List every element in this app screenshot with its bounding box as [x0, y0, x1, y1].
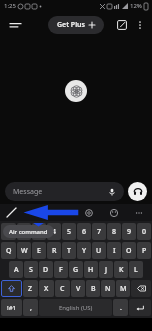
staticText: ,	[30, 303, 32, 313]
staticText: C	[60, 284, 65, 294]
staticText: Y	[82, 246, 87, 256]
button[interactable]: P	[137, 242, 151, 259]
button[interactable]: ,	[23, 299, 38, 316]
staticText: 7	[97, 227, 102, 237]
button[interactable]: L	[129, 261, 143, 278]
staticText: R	[52, 246, 57, 256]
button[interactable]: Get Plus	[48, 16, 104, 34]
staticText: I	[113, 246, 116, 256]
staticText: D	[43, 265, 49, 275]
staticText: S	[29, 265, 33, 275]
button[interactable]: K	[114, 261, 128, 278]
staticText: N	[105, 284, 111, 294]
button[interactable]: S	[24, 261, 38, 278]
button[interactable]: M	[116, 280, 130, 297]
staticText: 1	[6, 227, 11, 237]
button[interactable]: !#1	[1, 299, 22, 316]
staticText: U	[96, 246, 102, 256]
button[interactable]: 4	[47, 223, 61, 240]
button[interactable]: T	[62, 242, 76, 259]
staticText: 4	[52, 227, 57, 237]
button[interactable]: V	[71, 280, 85, 297]
staticText: 8	[112, 227, 117, 237]
staticText: 1:25	[4, 2, 16, 10]
button[interactable]: Message	[5, 182, 124, 201]
button[interactable]: Enter	[129, 299, 151, 316]
button[interactable]: H	[84, 261, 98, 278]
button[interactable]: F	[54, 261, 68, 278]
button[interactable]: Q	[1, 242, 16, 259]
button[interactable]: Shift	[1, 280, 22, 297]
button[interactable]: 9	[122, 223, 136, 240]
staticText: 9	[127, 227, 132, 237]
staticText: Z	[28, 284, 33, 294]
staticText: B	[91, 284, 96, 294]
staticText: A	[14, 265, 19, 275]
staticText: J	[105, 265, 108, 275]
button[interactable]: New chat	[113, 16, 131, 34]
staticText: L	[134, 265, 138, 275]
button[interactable]: Y	[77, 242, 91, 259]
staticText: G	[73, 265, 79, 275]
button[interactable]: E	[32, 242, 46, 259]
button[interactable]: 8	[107, 223, 121, 240]
button[interactable]: I	[107, 242, 121, 259]
staticText: X	[44, 284, 49, 294]
staticText: 3	[37, 227, 42, 237]
button[interactable]: D	[39, 261, 53, 278]
button[interactable]: R	[47, 242, 61, 259]
staticText: Q	[6, 246, 12, 256]
button[interactable]: C	[55, 280, 70, 297]
button[interactable]: More options	[131, 16, 149, 34]
button[interactable]: J	[99, 261, 113, 278]
staticText: 6	[82, 227, 87, 237]
button[interactable]: O	[122, 242, 136, 259]
staticText: F	[59, 265, 63, 275]
staticText: English (US)	[59, 304, 93, 312]
button[interactable]: 1	[1, 223, 16, 240]
button[interactable]: More	[132, 206, 145, 219]
staticText: 5	[67, 227, 72, 237]
button[interactable]: B	[86, 280, 100, 297]
button[interactable]: W	[17, 242, 31, 259]
staticText: 2	[22, 227, 27, 237]
staticText: !#1	[7, 304, 16, 312]
button[interactable]: 6	[77, 223, 91, 240]
staticText: Get Plus	[57, 20, 86, 30]
staticText: .	[120, 303, 122, 313]
button[interactable]: 5	[62, 223, 76, 240]
button[interactable]: Z	[23, 280, 38, 297]
button[interactable]: Voice mode	[128, 182, 147, 201]
other: Voice input	[108, 188, 116, 196]
button[interactable]: A	[9, 261, 23, 278]
button[interactable]: Menu	[6, 16, 24, 34]
button[interactable]: X	[39, 280, 54, 297]
staticText: 12%	[130, 2, 142, 10]
staticText: O	[126, 246, 132, 256]
staticText: 0	[142, 227, 147, 237]
button[interactable]: 7	[92, 223, 106, 240]
button[interactable]: Handwriting	[5, 206, 18, 219]
button[interactable]: 0	[137, 223, 151, 240]
staticText: V	[76, 284, 81, 294]
button[interactable]: G	[69, 261, 83, 278]
button[interactable]: .	[113, 299, 128, 316]
button[interactable]: Emoji	[107, 206, 120, 219]
button[interactable]: 2	[17, 223, 31, 240]
button[interactable]: Settings	[82, 206, 95, 219]
staticText: Message	[13, 187, 43, 197]
button[interactable]: N	[101, 280, 115, 297]
button[interactable]: 3	[32, 223, 46, 240]
staticText: H	[88, 265, 94, 275]
button[interactable]: Backspace	[131, 280, 151, 297]
staticText: T	[67, 246, 71, 256]
staticText: W	[21, 246, 28, 256]
staticText: P	[142, 246, 147, 256]
staticText: M	[120, 284, 127, 294]
button[interactable]: Air command	[3, 225, 54, 238]
staticText: E	[37, 246, 41, 256]
staticText: K	[119, 265, 124, 275]
button[interactable]: U	[92, 242, 106, 259]
staticText: Air command	[9, 228, 48, 236]
button[interactable]: English (US)	[39, 299, 112, 316]
